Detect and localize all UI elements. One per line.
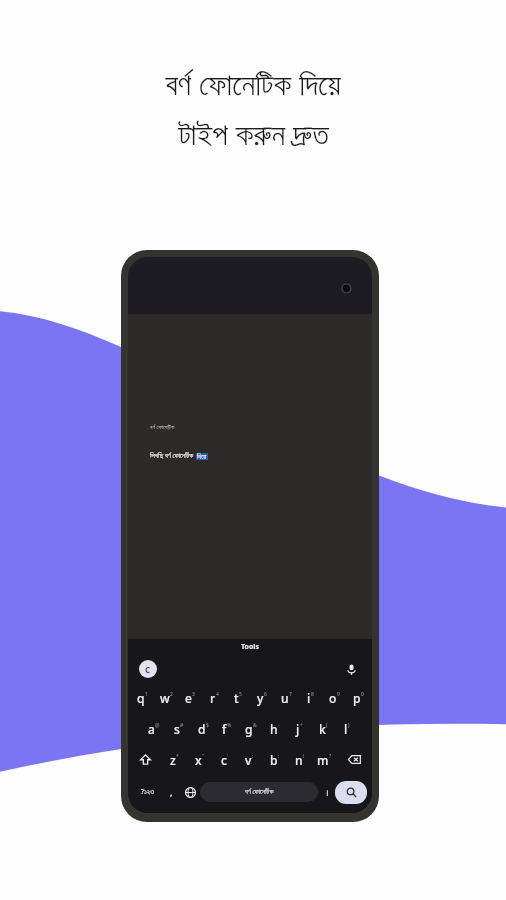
button[interactable]: Clipboard [139,660,157,678]
button[interactable]: ?১২৩ [133,775,163,809]
staticText: টাইপ করুন দ্রুত [178,112,329,154]
staticText: ( [326,722,328,729]
staticText: z [170,752,176,768]
staticText: C [145,664,151,675]
staticText: " [202,753,205,760]
staticText: p [353,690,361,706]
staticText: ? [329,753,332,760]
button[interactable]: f [215,713,239,744]
button[interactable]: Backspace [337,744,372,775]
button[interactable]: u [274,682,298,713]
staticText: দিয়ে [197,453,207,460]
staticText: 4 [216,691,219,698]
staticText: * [176,753,179,760]
staticText: s [174,721,180,737]
staticText: j [296,721,300,737]
staticText: y [257,690,264,706]
staticText: 6 [264,691,267,698]
staticText: g [245,721,253,737]
staticText: & [253,722,257,729]
button[interactable]: v [237,744,262,775]
button[interactable]: q [130,682,154,713]
button[interactable]: j [287,713,311,744]
staticText: ) [348,722,350,729]
staticText: 3 [192,691,195,698]
staticText: l [344,721,348,737]
staticText: + [300,722,303,729]
staticText: ; [278,753,280,760]
staticText: 9 [337,691,340,698]
staticText: c [221,752,227,768]
button[interactable]: Voice input [342,660,360,678]
button[interactable]: w [154,682,178,713]
staticText: বর্ণ ফোনেটিক দিয়ে [165,62,341,104]
button[interactable]: m [312,744,337,775]
button[interactable]: Shift [128,744,162,775]
staticText: $ [206,722,209,729]
staticText: r [210,690,216,706]
staticText: w [160,690,170,706]
button[interactable]: Search [335,781,367,804]
staticText: a [148,721,155,737]
staticText: t [234,690,239,706]
staticText: লিখছি বর্ণ ফোনেটিক [150,451,196,461]
staticText: ?১২৩ [141,787,155,797]
button[interactable]: o [322,682,346,713]
button[interactable]: g [239,713,263,744]
button[interactable]: । [318,775,335,809]
button[interactable]: r [202,682,226,713]
staticText: , [170,786,173,798]
button[interactable]: t [226,682,250,713]
staticText: Tools [241,642,259,652]
staticText: 2 [170,691,173,698]
staticText: 5 [239,691,242,698]
staticText: o [329,690,337,706]
staticText: । [325,786,329,798]
button[interactable]: p [346,682,370,713]
staticText: 1 [145,691,148,698]
staticText: বর্ণ ফোনেটিক [150,423,175,431]
button[interactable]: e [178,682,202,713]
button[interactable]: d [191,713,215,744]
button[interactable]: x [187,744,212,775]
staticText: ' [227,753,229,760]
button[interactable]: , [163,775,180,809]
staticText: i [307,690,311,706]
button[interactable]: c [212,744,237,775]
button[interactable]: k [311,713,335,744]
staticText: q [137,690,145,706]
staticText: h [270,721,278,737]
staticText: 8 [311,691,314,698]
staticText: বর্ণ ফোনেটিক [245,787,274,797]
staticText: v [245,752,252,768]
staticText: n [295,752,303,768]
staticText: m [317,752,329,768]
staticText: x [195,752,202,768]
staticText: @ [155,722,160,729]
staticText: 0 [361,691,364,698]
button[interactable]: বর্ণ ফোনেটিক [200,782,318,802]
staticText: - [278,722,280,729]
button[interactable]: z [162,744,187,775]
staticText: u [281,690,289,706]
button[interactable]: n [287,744,312,775]
staticText: k [319,721,326,737]
staticText: d [198,721,206,737]
button[interactable]: l [335,713,359,744]
staticText: e [185,690,192,706]
button[interactable]: i [298,682,322,713]
staticText: : [252,753,254,760]
button[interactable]: h [263,713,287,744]
button[interactable]: y [250,682,274,713]
staticText: ! [303,753,305,760]
button[interactable]: a [141,713,166,744]
button[interactable]: Change language [180,775,200,809]
staticText: b [270,752,278,768]
staticText: % [227,722,232,729]
staticText: 7 [289,691,292,698]
button[interactable]: b [262,744,287,775]
staticText: # [180,722,184,729]
button[interactable]: s [166,713,191,744]
staticText: f [222,721,227,737]
